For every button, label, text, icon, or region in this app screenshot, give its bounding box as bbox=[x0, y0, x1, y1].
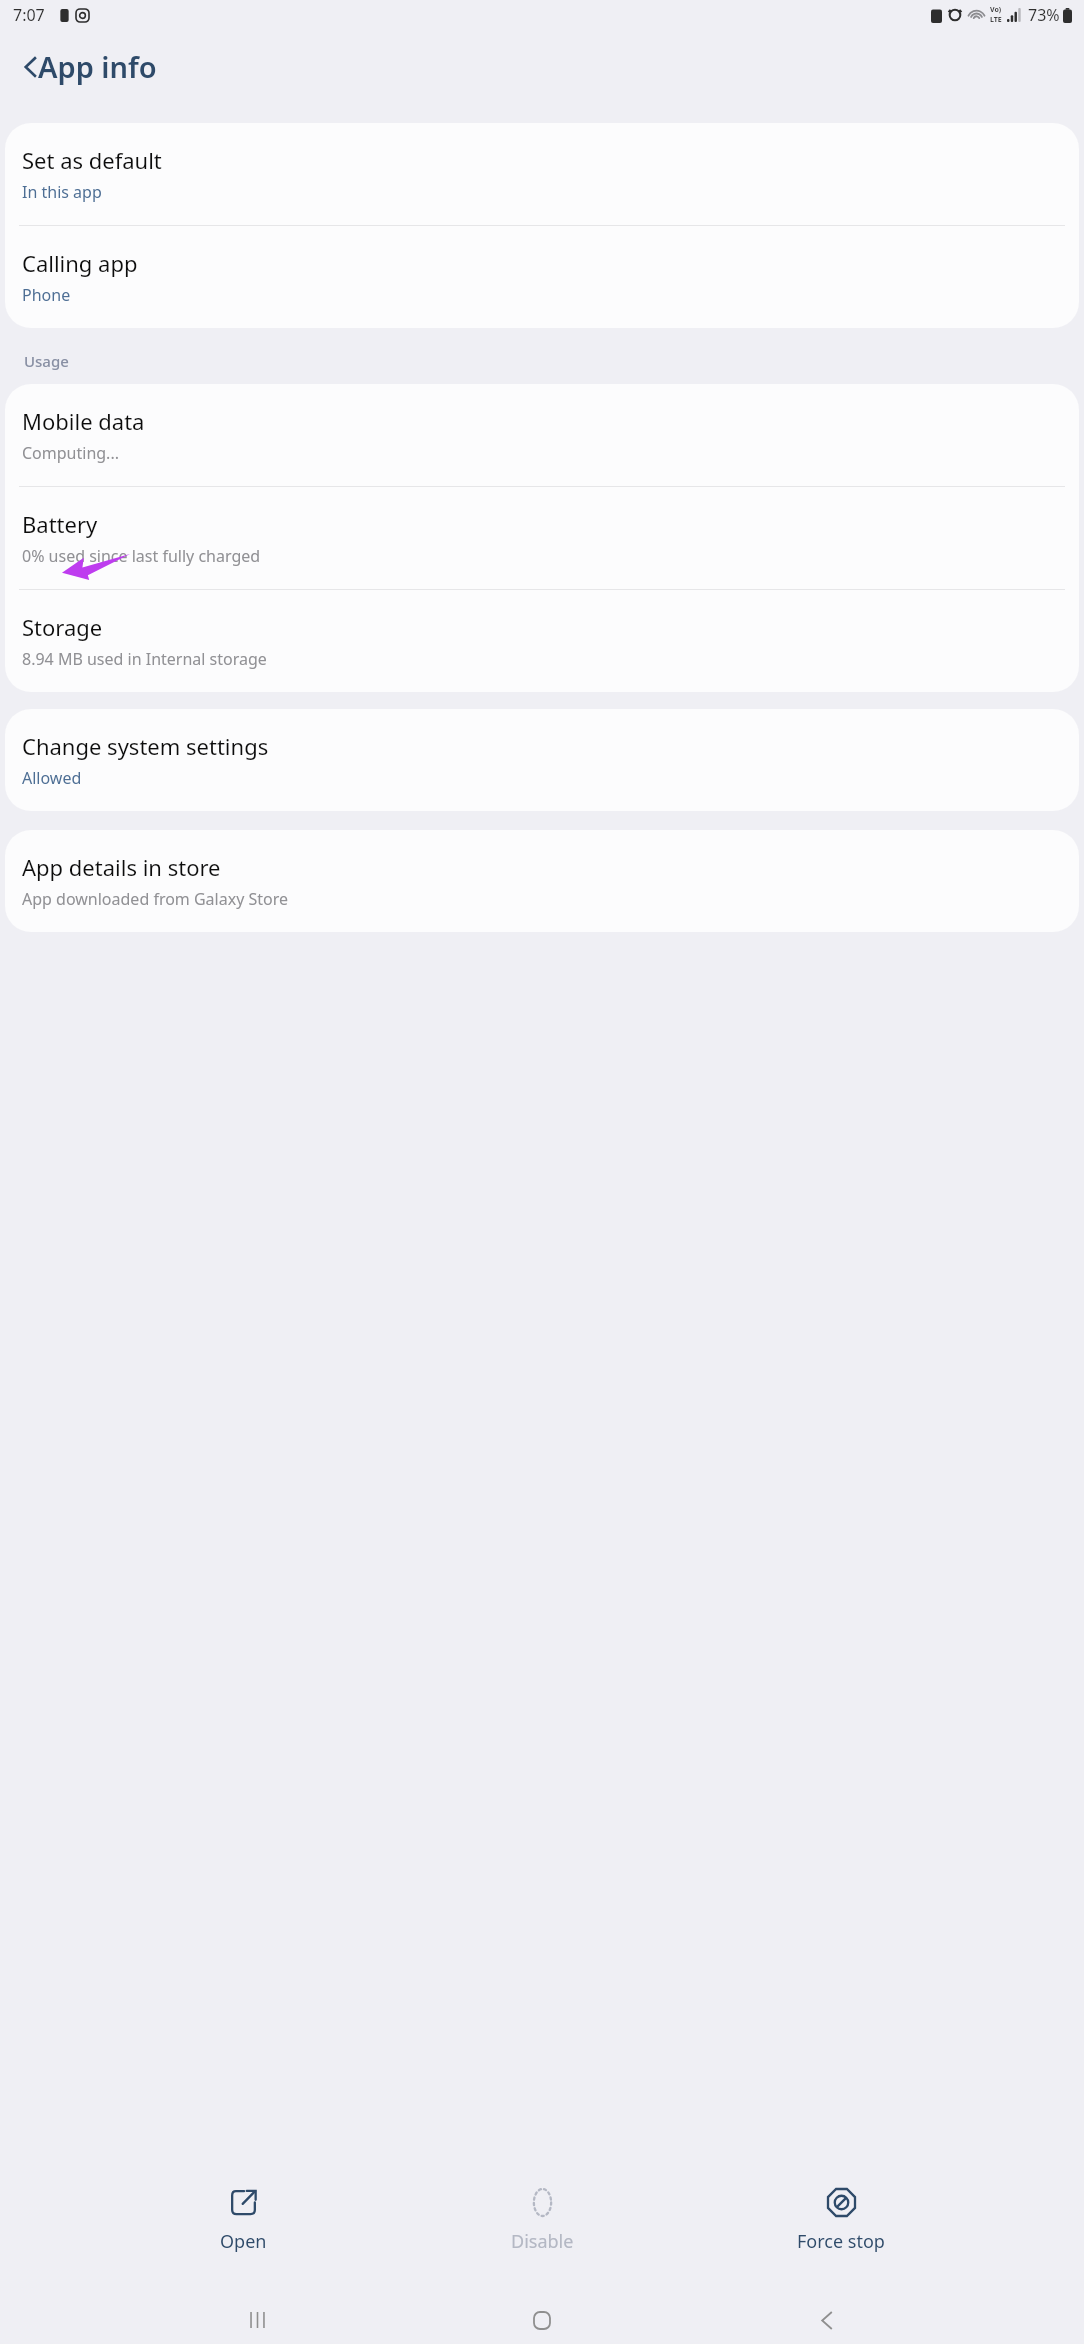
button[interactable]: Force stop bbox=[785, 2175, 897, 2262]
staticText: Phone bbox=[22, 284, 71, 306]
staticText: LTE bbox=[990, 15, 1002, 25]
button[interactable]: Disable bbox=[486, 2175, 598, 2262]
button[interactable]: Battery bbox=[5, 487, 1079, 589]
staticText: Mobile data bbox=[22, 406, 145, 436]
staticText: Open bbox=[220, 2229, 267, 2254]
staticText: App info bbox=[38, 47, 157, 86]
staticText: Vo) bbox=[990, 5, 1002, 15]
staticText: Change system settings bbox=[22, 731, 269, 761]
button[interactable]: Back bbox=[5, 41, 57, 93]
staticText: Computing... bbox=[22, 442, 119, 464]
staticText: App downloaded from Galaxy Store bbox=[22, 888, 289, 910]
staticText: Allowed bbox=[22, 767, 82, 789]
button[interactable]: App details in store bbox=[5, 830, 1079, 932]
staticText: 7:07 bbox=[13, 4, 45, 26]
staticText: Disable bbox=[511, 2229, 574, 2254]
staticText: 8.94 MB used in Internal storage bbox=[22, 648, 267, 670]
button[interactable]: Mobile data bbox=[5, 384, 1079, 486]
staticText: Force stop bbox=[797, 2229, 885, 2254]
staticText: App details in store bbox=[22, 852, 221, 882]
staticText: In this app bbox=[22, 181, 102, 203]
staticText: Usage bbox=[24, 351, 69, 371]
button[interactable]: Back bbox=[799, 2296, 855, 2344]
staticText: 0% used since last fully charged bbox=[22, 545, 261, 567]
staticText: Calling app bbox=[22, 248, 138, 278]
button[interactable]: Change system settings bbox=[5, 709, 1079, 811]
button[interactable]: Recents bbox=[229, 2296, 285, 2344]
button[interactable]: Set as default bbox=[5, 123, 1079, 225]
button[interactable]: Open bbox=[187, 2175, 299, 2262]
staticText: Battery bbox=[22, 509, 98, 539]
button[interactable]: Storage bbox=[5, 590, 1079, 692]
staticText: Set as default bbox=[22, 145, 162, 175]
staticText: Storage bbox=[22, 612, 103, 642]
staticText: 73% bbox=[1028, 4, 1060, 26]
button[interactable]: Calling app bbox=[5, 226, 1079, 328]
button[interactable]: Home bbox=[514, 2296, 570, 2344]
